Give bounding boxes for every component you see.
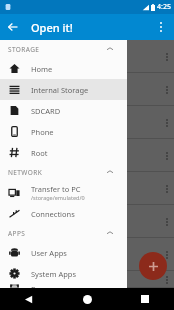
staticText: Internal Storage (31, 85, 89, 95)
staticText: System Apps (31, 269, 77, 279)
button[interactable] (0, 172, 174, 205)
staticText: User Apps (31, 248, 67, 258)
button[interactable] (0, 205, 174, 238)
button[interactable]: Processes (0, 284, 127, 288)
button[interactable]: Back (0, 14, 26, 40)
button[interactable] (0, 238, 174, 271)
button[interactable]: Add (139, 252, 167, 280)
button[interactable] (0, 106, 174, 139)
staticText: Home (31, 64, 53, 74)
button[interactable]: More options (148, 14, 174, 40)
button[interactable] (0, 139, 174, 172)
staticText: Transfer to PC (31, 184, 81, 194)
button[interactable]: SDCARD (0, 100, 127, 121)
button[interactable] (0, 271, 174, 288)
staticText: STORAGE (8, 45, 40, 54)
button[interactable]: Recents (116, 288, 174, 310)
button[interactable]: Transfer to PC (0, 181, 127, 203)
button[interactable]: User Apps (0, 242, 127, 263)
staticText: Processes (31, 284, 66, 288)
staticText: APPS (8, 229, 26, 238)
button[interactable]: Root (0, 142, 127, 163)
button[interactable]: System Apps (0, 263, 127, 284)
staticText: Phone (31, 127, 54, 137)
staticText: NETWORK (8, 168, 43, 177)
button[interactable] (0, 73, 174, 106)
button[interactable] (0, 40, 174, 73)
button[interactable]: Home (58, 288, 116, 310)
button[interactable]: Phone (0, 121, 127, 142)
staticText: SDCARD (31, 106, 61, 116)
button[interactable]: Back (0, 288, 58, 310)
staticText: 4:25 (157, 2, 171, 12)
staticText: Root (31, 148, 48, 158)
staticText: Connections (31, 209, 75, 219)
button[interactable]: Home (0, 58, 127, 79)
staticText: /storage/emulated/0 (31, 194, 85, 201)
staticText: Open it! (31, 20, 73, 35)
button[interactable]: Connections (0, 203, 127, 224)
button[interactable]: Internal Storage (0, 79, 127, 100)
